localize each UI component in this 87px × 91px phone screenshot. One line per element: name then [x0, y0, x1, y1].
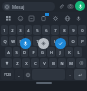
staticText: D — [23, 50, 26, 55]
button[interactable]: U — [51, 36, 59, 46]
staticText: Z — [16, 61, 19, 66]
button[interactable]: 3 — [17, 25, 24, 35]
button[interactable]: Camera — [66, 2, 74, 10]
staticText: Q — [3, 39, 7, 44]
button[interactable]: Mesaj — [2, 2, 55, 11]
staticText: U — [54, 39, 57, 44]
staticText: 1 — [3, 28, 6, 33]
button[interactable]: Confirm — [55, 38, 66, 49]
button[interactable]: , — [15, 69, 23, 80]
button[interactable]: 7 — [51, 25, 59, 35]
button[interactable]: Emoji — [24, 69, 31, 80]
button[interactable]: Grid — [4, 14, 13, 23]
staticText: L — [77, 50, 80, 55]
staticText: N — [60, 61, 64, 66]
staticText: 7 — [54, 28, 57, 33]
button[interactable]: 6 — [42, 25, 50, 35]
staticText: ?123 — [4, 73, 11, 77]
staticText: 3 — [19, 28, 22, 33]
button[interactable]: D — [21, 47, 28, 57]
button[interactable]: E — [17, 36, 24, 46]
button[interactable]: W — [9, 36, 16, 46]
staticText: J — [59, 50, 61, 55]
staticText: 5 — [36, 28, 39, 33]
button[interactable]: C — [31, 58, 39, 68]
button[interactable]: X — [22, 58, 30, 68]
button[interactable]: M — [67, 58, 75, 68]
button[interactable]: N — [58, 58, 66, 68]
button[interactable]: 0 — [78, 25, 86, 35]
button[interactable]: GIF — [27, 14, 36, 23]
staticText: W — [11, 39, 15, 44]
button[interactable]: S — [13, 47, 20, 57]
button[interactable]: Z — [13, 58, 21, 68]
button[interactable]: Shift — [1, 58, 12, 68]
staticText: Mesaj — [12, 4, 25, 10]
button[interactable]: Settings — [51, 14, 60, 23]
button[interactable]: J — [56, 47, 64, 57]
button[interactable]: 5 — [33, 25, 41, 35]
button[interactable]: F — [29, 47, 37, 57]
button[interactable]: I — [60, 36, 68, 46]
button[interactable]: Q — [1, 36, 8, 46]
staticText: 0 — [81, 28, 84, 33]
staticText: P — [81, 39, 84, 44]
button[interactable]: Emoji — [16, 14, 25, 23]
staticText: 8 — [63, 28, 66, 33]
staticText: G — [41, 50, 44, 55]
staticText: , — [18, 72, 20, 77]
button[interactable]: 2 — [9, 25, 16, 35]
button[interactable]: P — [78, 36, 86, 46]
button[interactable]: Cursor — [38, 38, 49, 49]
button[interactable]: R — [25, 36, 32, 46]
staticText: 9 — [72, 28, 75, 33]
button[interactable]: O — [69, 36, 77, 46]
button[interactable]: B — [49, 58, 57, 68]
staticText: S — [15, 50, 18, 55]
staticText: Y — [45, 39, 48, 44]
staticText: H — [50, 50, 53, 55]
button[interactable]: G — [38, 47, 46, 57]
staticText: C — [34, 61, 37, 66]
button[interactable]: V — [40, 58, 48, 68]
staticText: E — [19, 39, 22, 44]
staticText: 2 — [11, 28, 14, 33]
staticText: O — [71, 39, 75, 44]
button[interactable]: A — [5, 47, 12, 57]
staticText: . — [69, 72, 71, 77]
staticText: B — [52, 61, 55, 66]
button[interactable]: Clipboard — [39, 14, 48, 23]
staticText: F — [32, 50, 35, 55]
staticText: M — [69, 61, 73, 66]
button[interactable]: Translate — [63, 14, 72, 23]
button[interactable]: H — [47, 47, 55, 57]
button[interactable]: Voice message — [75, 1, 85, 11]
button[interactable]: Enter — [74, 69, 86, 80]
staticText: R — [27, 39, 30, 44]
button[interactable]: Backspace — [76, 58, 86, 68]
button[interactable]: Voice — [74, 14, 83, 23]
staticText: X — [25, 61, 28, 66]
button[interactable]: Attach — [57, 2, 65, 10]
button[interactable]: Record — [20, 38, 31, 49]
staticText: I — [63, 39, 65, 44]
staticText: T — [36, 39, 39, 44]
button[interactable]: T — [33, 36, 41, 46]
button[interactable]: 1 — [1, 25, 8, 35]
button[interactable]: Y — [42, 36, 50, 46]
staticText: V — [43, 61, 46, 66]
button[interactable]: 4 — [25, 25, 32, 35]
button[interactable]: . — [66, 69, 73, 80]
button[interactable]: ?123 — [1, 69, 14, 80]
button[interactable]: L — [74, 47, 82, 57]
staticText: 4 — [27, 28, 30, 33]
staticText: K — [68, 50, 71, 55]
staticText: 6 — [45, 28, 48, 33]
staticText: A — [7, 50, 10, 55]
button[interactable]: 8 — [60, 25, 68, 35]
button[interactable]: K — [65, 47, 73, 57]
button[interactable]: 9 — [69, 25, 77, 35]
